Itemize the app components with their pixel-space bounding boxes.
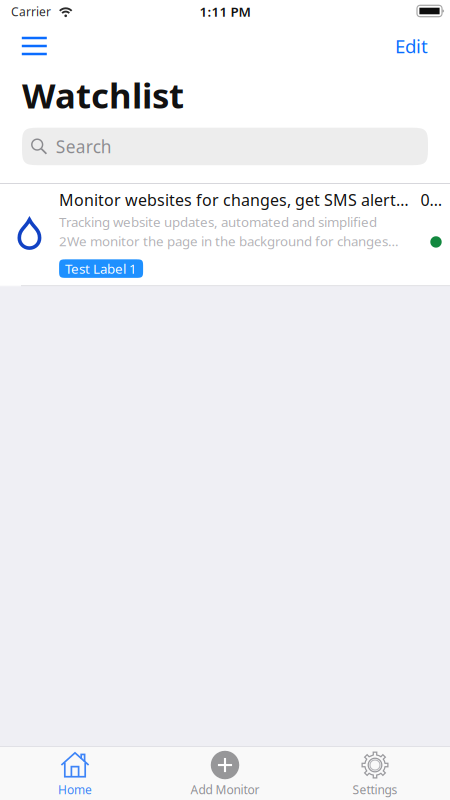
button[interactable]: Search [22, 128, 428, 165]
staticText: Test Label 1 [65, 260, 137, 277]
staticText: Settings [352, 781, 397, 797]
button[interactable]: Home [0, 744, 150, 800]
button[interactable]: Monitor websites for changes, get SMS al… [0, 184, 450, 285]
staticText: Carrier [11, 3, 51, 19]
staticText: Edit [395, 34, 428, 58]
staticText: Watchlist [22, 72, 184, 118]
button[interactable]: Add Monitor [150, 744, 300, 800]
button[interactable]: Settings [300, 744, 450, 800]
staticText: 2We monitor the page in the background f… [59, 232, 399, 250]
staticText: Monitor websites for changes, get SMS al… [59, 189, 414, 210]
staticText: Tracking website updates, automated and … [59, 213, 377, 231]
button[interactable]: Edit [381, 24, 450, 60]
staticText: Home [58, 781, 92, 797]
staticText: 1:11 PM [199, 3, 250, 20]
staticText: 0… [421, 189, 443, 210]
staticText: Search [56, 135, 112, 158]
staticText: Add Monitor [190, 781, 259, 797]
button[interactable]: Menu [0, 24, 57, 60]
